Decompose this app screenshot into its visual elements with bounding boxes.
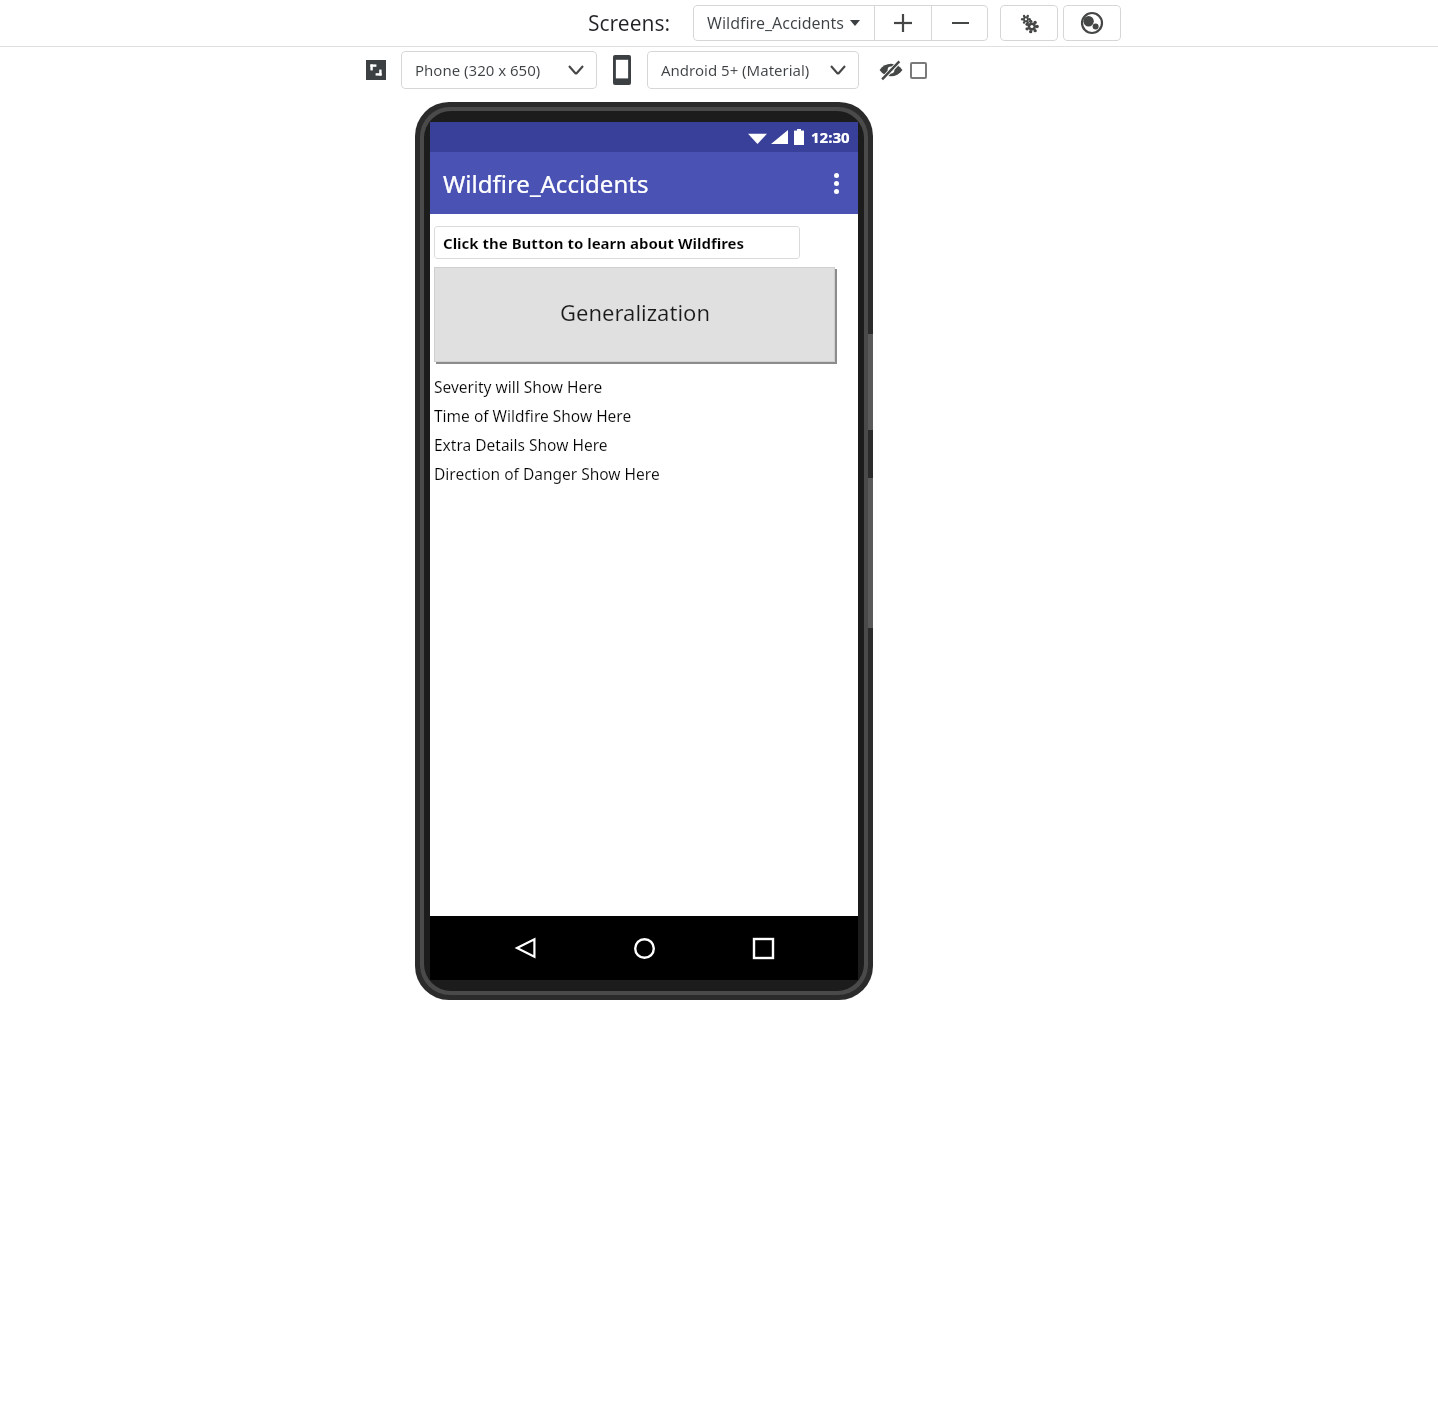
button[interactable]: Phone (320 x 650) — [401, 51, 597, 89]
button[interactable]: Remove screen — [932, 5, 988, 41]
button[interactable]: Click the Button to learn about Wildfire… — [434, 226, 800, 259]
button[interactable]: Project settings — [1000, 5, 1058, 41]
button[interactable]: Toggle preview size — [365, 59, 387, 81]
staticText: Extra Details Show Here — [434, 434, 608, 455]
staticText: Click the Button to learn about Wildfire… — [443, 233, 745, 253]
button[interactable]: Android 5+ (Material) — [647, 51, 859, 89]
staticText: 12:30 — [811, 127, 850, 147]
button[interactable]: Home — [621, 925, 667, 971]
staticText: Phone (320 x 650) — [415, 60, 541, 80]
button[interactable]: Publish to gallery — [1063, 5, 1121, 41]
button[interactable]: Show hidden components checkbox — [910, 62, 927, 79]
staticText: Wildfire_Accidents — [707, 12, 844, 34]
button[interactable]: Generalization — [434, 267, 835, 362]
button[interactable]: Back — [503, 925, 549, 971]
staticText: Time of Wildfire Show Here — [434, 405, 632, 426]
button[interactable]: Phone preview — [613, 55, 631, 85]
staticText: Direction of Danger Show Here — [434, 463, 660, 484]
staticText: Generalization — [560, 297, 710, 327]
button[interactable]: Wildfire_Accidents — [693, 5, 874, 41]
staticText: Severity will Show Here — [434, 376, 603, 397]
staticText: Android 5+ (Material) — [661, 60, 810, 80]
button[interactable]: More options — [814, 161, 858, 205]
button[interactable]: Recent apps — [740, 925, 786, 971]
button[interactable]: Show hidden components — [877, 56, 905, 84]
staticText: Screens: — [588, 9, 671, 38]
staticText: Wildfire_Accidents — [443, 167, 649, 200]
button[interactable]: Add screen — [875, 5, 931, 41]
